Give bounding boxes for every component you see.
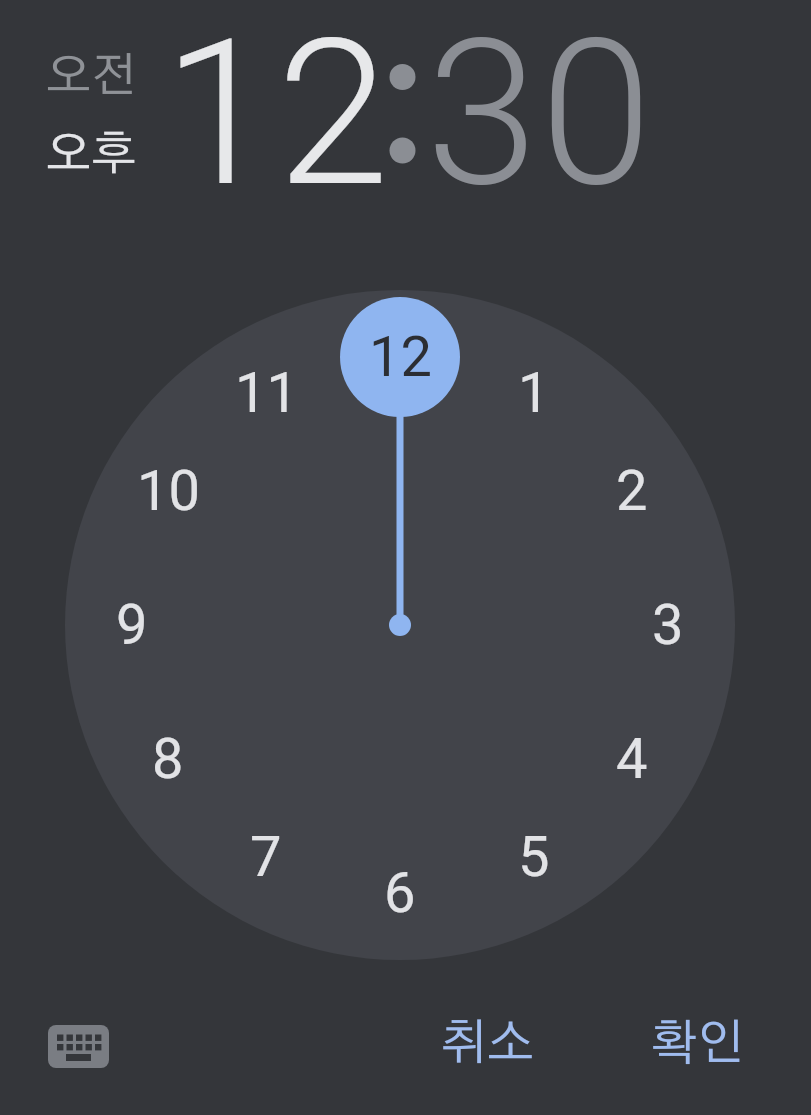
button[interactable]: 1 bbox=[474, 333, 594, 453]
staticText: 3 bbox=[652, 592, 684, 658]
button[interactable]: 5 bbox=[474, 797, 594, 917]
button[interactable]: 4 bbox=[572, 699, 692, 819]
button[interactable]: 6 bbox=[340, 833, 460, 953]
button[interactable]: 오전 bbox=[11, 32, 171, 122]
staticText: 9 bbox=[116, 592, 148, 658]
staticText: 오후 bbox=[46, 132, 137, 179]
button[interactable]: 8 bbox=[108, 699, 228, 819]
button[interactable]: 2 bbox=[572, 431, 692, 551]
button[interactable]: 오후 bbox=[11, 110, 171, 200]
button[interactable]: 11 bbox=[206, 333, 326, 453]
button[interactable]: 9 bbox=[72, 565, 192, 685]
button[interactable]: 12 bbox=[163, 0, 392, 233]
staticText: 10 bbox=[137, 458, 200, 524]
staticText: 2 bbox=[616, 458, 648, 524]
button[interactable]: 30 bbox=[426, 0, 655, 233]
button[interactable]: 취소 bbox=[402, 1004, 572, 1084]
staticText: 11 bbox=[235, 360, 298, 426]
staticText: 오전 bbox=[46, 54, 137, 101]
staticText: 4 bbox=[616, 726, 648, 792]
button[interactable] bbox=[36, 1013, 122, 1081]
staticText: 취소 bbox=[440, 1020, 535, 1069]
button[interactable]: 확인 bbox=[612, 1004, 782, 1084]
staticText: 8 bbox=[152, 726, 184, 792]
button[interactable]: 3 bbox=[608, 565, 728, 685]
button[interactable]: 10 bbox=[108, 431, 228, 551]
staticText: 5 bbox=[518, 824, 550, 890]
staticText: 6 bbox=[384, 860, 416, 926]
button[interactable]: 12 bbox=[340, 297, 460, 417]
staticText: 1 bbox=[518, 360, 550, 426]
staticText: 12 bbox=[369, 324, 432, 390]
staticText: 확인 bbox=[650, 1020, 745, 1069]
staticText: 7 bbox=[250, 824, 282, 890]
button[interactable]: 7 bbox=[206, 797, 326, 917]
